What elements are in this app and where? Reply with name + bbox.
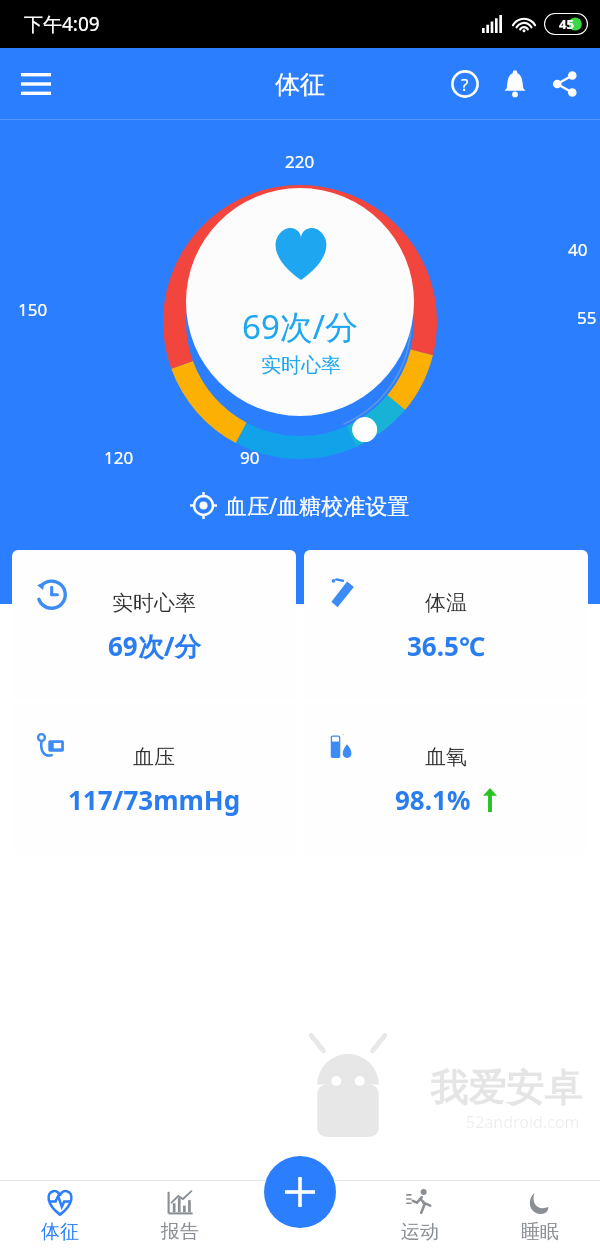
staticText: 120 — [104, 446, 134, 469]
staticText: 下午4:09 — [24, 11, 100, 37]
button[interactable]: 血压/血糖校准设置 — [0, 482, 600, 528]
button[interactable]: 体征 — [0, 1181, 120, 1249]
button[interactable]: 血氧 — [304, 704, 588, 854]
staticText: 69次/分 — [242, 304, 359, 349]
staticText: 体征 — [275, 69, 325, 100]
staticText: 90 — [240, 446, 260, 469]
staticText: 150 — [18, 298, 48, 321]
staticText: 220 — [285, 150, 315, 173]
button[interactable]: 报告 — [120, 1181, 240, 1249]
button[interactable]: 血压 — [12, 704, 296, 854]
button[interactable]: 体温 — [304, 550, 588, 700]
staticText: 体征 — [41, 1220, 79, 1244]
staticText: 血压 — [133, 744, 175, 770]
staticText: 实时心率 — [112, 590, 196, 616]
staticText: 实时心率 — [261, 353, 341, 378]
staticText: ? — [461, 73, 469, 96]
button[interactable]: Help — [444, 63, 486, 105]
staticText: 36.5℃ — [407, 628, 486, 663]
button[interactable]: Share — [544, 63, 586, 105]
staticText: 117/73mmHg — [68, 782, 241, 817]
staticText: 98.1% — [395, 782, 471, 817]
staticText: 45 — [559, 15, 574, 33]
staticText: 血氧 — [425, 744, 467, 770]
button[interactable]: 运动 — [360, 1181, 480, 1249]
staticText: 睡眠 — [521, 1220, 559, 1244]
button[interactable]: Add — [264, 1156, 336, 1228]
staticText: 69次/分 — [108, 628, 201, 664]
staticText: 运动 — [401, 1220, 439, 1244]
staticText: 40 — [568, 238, 588, 261]
button[interactable]: Notifications — [494, 63, 536, 105]
staticText: 体温 — [425, 590, 467, 616]
button[interactable]: Menu — [12, 60, 60, 108]
staticText: 我爱安卓 — [430, 1064, 582, 1112]
button[interactable]: 睡眠 — [480, 1181, 600, 1249]
staticText: 报告 — [161, 1220, 199, 1244]
staticText: 血压/血糖校准设置 — [225, 490, 410, 520]
staticText: 55 — [577, 306, 597, 329]
staticText: 52android.com — [466, 1111, 580, 1133]
button[interactable]: 实时心率 — [12, 550, 296, 700]
button[interactable]: 69次/分 — [186, 188, 414, 416]
